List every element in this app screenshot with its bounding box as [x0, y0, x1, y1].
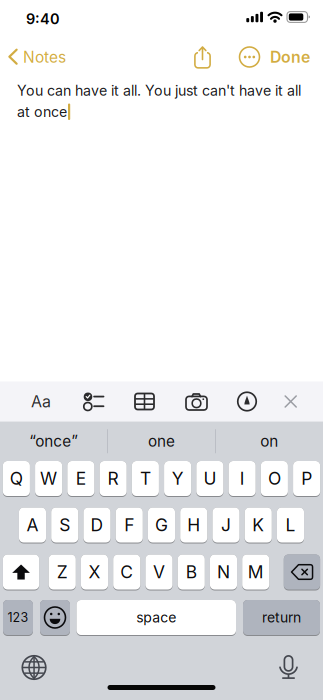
staticText: J — [221, 514, 231, 536]
staticText: Notes — [23, 48, 66, 66]
button[interactable]: return — [243, 600, 320, 636]
staticText: Y — [172, 468, 184, 489]
button[interactable]: Z — [49, 554, 76, 590]
staticText: X — [88, 561, 100, 583]
staticText: K — [252, 514, 264, 536]
button[interactable]: B — [178, 554, 205, 590]
button[interactable]: Camera — [182, 393, 210, 410]
button[interactable]: L — [277, 507, 304, 543]
button[interactable]: Dictation — [279, 655, 323, 679]
staticText: Aa — [31, 392, 51, 411]
button[interactable]: S — [51, 507, 78, 543]
staticText: N — [217, 561, 230, 583]
button[interactable]: K — [245, 507, 272, 543]
staticText: W — [40, 468, 57, 489]
staticText: R — [108, 468, 119, 489]
staticText: return — [262, 609, 301, 626]
staticText: space — [136, 609, 176, 626]
staticText: E — [76, 468, 86, 489]
button[interactable]: O — [261, 461, 288, 497]
button[interactable]: Y — [164, 461, 191, 497]
button[interactable]: N — [210, 554, 237, 590]
button[interactable]: W — [35, 461, 62, 497]
staticText: O — [268, 468, 281, 489]
staticText: U — [203, 468, 216, 489]
button[interactable]: Share — [192, 45, 212, 68]
staticText: on — [260, 432, 278, 450]
button[interactable]: Done — [270, 47, 310, 66]
button[interactable]: space — [76, 600, 236, 636]
staticText: H — [187, 514, 200, 536]
staticText: 123 — [7, 610, 28, 625]
button[interactable]: M — [242, 554, 269, 590]
staticText: D — [90, 514, 103, 536]
button[interactable]: 123 — [3, 600, 33, 636]
button[interactable]: R — [100, 461, 127, 497]
staticText: Done — [270, 47, 310, 66]
button[interactable]: Next keyboard — [0, 656, 46, 679]
button[interactable]: D — [83, 507, 111, 543]
button[interactable]: Delete — [284, 554, 320, 590]
button[interactable]: E — [67, 461, 94, 497]
button[interactable]: Back to Notes — [0, 48, 66, 66]
staticText: T — [140, 468, 151, 489]
button[interactable]: Close toolbar — [277, 395, 305, 408]
staticText: You can have it all. You just can't have… — [17, 82, 301, 99]
staticText: “once” — [29, 432, 78, 450]
button[interactable]: H — [180, 507, 207, 543]
staticText: L — [285, 514, 295, 536]
button[interactable]: Emoji — [40, 600, 70, 636]
button[interactable]: on — [216, 421, 323, 461]
button[interactable]: one — [108, 421, 215, 461]
button[interactable]: U — [196, 461, 223, 497]
button[interactable]: Checklist — [80, 392, 108, 411]
staticText: at once — [17, 103, 67, 120]
button[interactable]: T — [132, 461, 159, 497]
button[interactable]: “once” — [0, 421, 107, 461]
staticText: C — [120, 561, 133, 583]
staticText: Z — [57, 561, 68, 583]
button[interactable]: F — [116, 507, 143, 543]
staticText: S — [59, 514, 70, 536]
staticText: V — [153, 561, 165, 583]
button[interactable]: G — [148, 507, 175, 543]
staticText: P — [301, 468, 312, 489]
staticText: G — [155, 514, 168, 536]
staticText: Q — [10, 468, 23, 489]
button[interactable]: C — [113, 554, 140, 590]
staticText: 9:40 — [26, 10, 60, 28]
staticText: B — [186, 561, 197, 583]
button[interactable]: A — [19, 507, 46, 543]
button[interactable]: Q — [3, 461, 30, 497]
staticText: M — [248, 561, 264, 583]
staticText: A — [26, 514, 38, 536]
staticText: one — [148, 432, 175, 450]
button[interactable]: J — [212, 507, 240, 543]
button[interactable]: V — [145, 554, 172, 590]
button[interactable]: X — [81, 554, 108, 590]
button[interactable]: More — [239, 46, 260, 67]
staticText: I — [240, 468, 245, 489]
button[interactable]: Shift — [3, 554, 39, 590]
button[interactable]: Markup — [233, 392, 261, 411]
button[interactable]: Table — [130, 393, 158, 409]
button[interactable]: Format — [27, 392, 55, 411]
staticText: F — [124, 514, 134, 536]
button[interactable]: P — [293, 461, 320, 497]
button[interactable]: I — [229, 461, 256, 497]
